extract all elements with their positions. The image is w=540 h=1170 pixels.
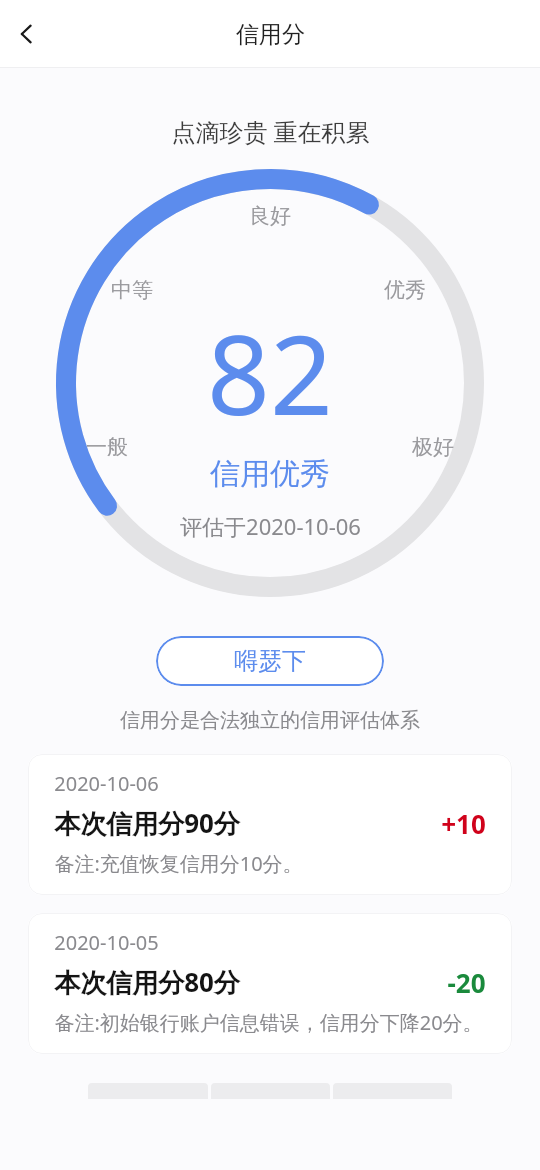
staticText: -20 xyxy=(447,965,486,1000)
staticText: 信用分是合法独立的信用评估体系 xyxy=(120,708,420,733)
staticText: 一般 xyxy=(86,434,128,460)
staticText: 良好 xyxy=(249,203,291,229)
staticText: 信用优秀 xyxy=(210,455,330,493)
button[interactable]: Back xyxy=(0,6,56,62)
staticText: 备注:初始银行账户信息错误，信用分下降20分。 xyxy=(54,1009,483,1036)
button[interactable]: 2020-10-05 xyxy=(28,913,512,1054)
staticText: 信用分 xyxy=(236,20,305,49)
staticText: 2020-10-05 xyxy=(54,929,159,956)
staticText: 备注:充值恢复信用分10分。 xyxy=(54,850,303,877)
staticText: 极好 xyxy=(412,434,454,460)
staticText: 本次信用分80分 xyxy=(54,964,240,1000)
staticText: 点滴珍贵 重在积累 xyxy=(171,115,370,148)
staticText: 中等 xyxy=(111,277,153,303)
staticText: 2020-10-06 xyxy=(54,770,159,797)
button[interactable]: 嘚瑟下 xyxy=(156,636,384,686)
staticText: 嘚瑟下 xyxy=(234,646,306,676)
staticText: 本次信用分90分 xyxy=(54,805,240,841)
staticText: +10 xyxy=(441,806,486,841)
staticText: 优秀 xyxy=(384,277,426,303)
button[interactable]: 2020-10-06 xyxy=(28,754,512,895)
staticText: 82 xyxy=(207,297,333,447)
staticText: 评估于2020-10-06 xyxy=(180,511,361,541)
